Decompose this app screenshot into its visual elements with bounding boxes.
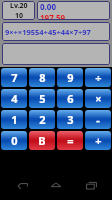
button[interactable]: 3 bbox=[57, 110, 83, 129]
staticText: B bbox=[38, 133, 46, 148]
staticText: = bbox=[67, 133, 74, 148]
staticText: 3 bbox=[67, 112, 74, 127]
button[interactable]: B bbox=[29, 131, 55, 150]
staticText: 2 bbox=[39, 112, 46, 127]
staticText: 10 bbox=[15, 11, 24, 20]
staticText: ÷ bbox=[95, 70, 102, 85]
staticText: Lv.20 bbox=[10, 1, 28, 11]
button[interactable]: 2 bbox=[29, 110, 55, 129]
staticText: 9 bbox=[67, 70, 74, 85]
staticText: 1 bbox=[11, 112, 18, 127]
button[interactable]: Lv.20 bbox=[2, 1, 35, 20]
staticText: × bbox=[95, 91, 102, 106]
staticText: 5 bbox=[39, 91, 46, 106]
staticText: 8 bbox=[39, 70, 46, 85]
button[interactable]: 6 bbox=[57, 89, 83, 108]
button[interactable]: 9 bbox=[57, 68, 83, 87]
staticText: 6 bbox=[67, 91, 74, 106]
staticText: + bbox=[95, 133, 102, 148]
button[interactable]: + bbox=[85, 131, 111, 150]
button[interactable]: 4 bbox=[1, 89, 27, 108]
button[interactable]: 7 bbox=[1, 68, 27, 87]
staticText: 7 bbox=[11, 70, 18, 85]
button[interactable]: 1 bbox=[1, 110, 27, 129]
staticText: - bbox=[96, 112, 100, 127]
button[interactable]: 8 bbox=[29, 68, 55, 87]
button[interactable]: 0 bbox=[1, 131, 27, 150]
button[interactable]: × bbox=[85, 89, 111, 108]
staticText: 0.00 bbox=[40, 1, 56, 12]
button[interactable]: = bbox=[57, 131, 83, 150]
button[interactable]: 5 bbox=[29, 89, 55, 108]
button[interactable]: Home bbox=[43, 172, 69, 198]
button[interactable]: Back bbox=[9, 172, 35, 198]
button[interactable]: Recent apps bbox=[78, 172, 104, 198]
staticText: 4 bbox=[11, 91, 18, 106]
button[interactable]: - bbox=[85, 110, 111, 129]
staticText: 9×÷×19554÷45÷44×7÷97 bbox=[5, 27, 91, 37]
button[interactable]: ÷ bbox=[85, 68, 111, 87]
staticText: 0 bbox=[11, 133, 18, 148]
staticText: 197.59 bbox=[40, 12, 66, 20]
